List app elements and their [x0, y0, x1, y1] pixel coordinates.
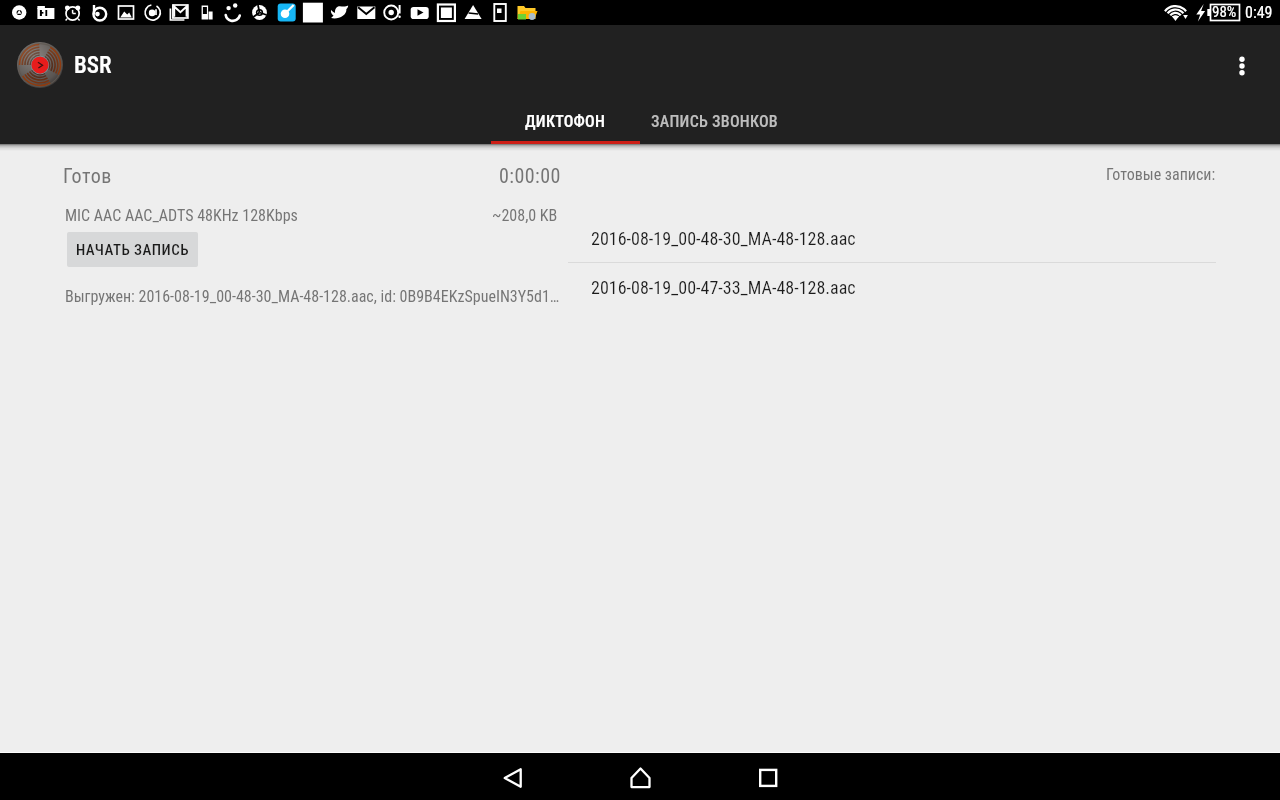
button[interactable]: BSR app icon: [0, 25, 126, 105]
staticText: 2016-08-19_00-47-33_MA-48-128.aac: [591, 277, 856, 298]
button[interactable]: ДИКТОФОН: [491, 105, 640, 144]
button[interactable]: Home: [576, 753, 704, 800]
staticText: BSR: [74, 52, 112, 79]
staticText: Готовые записи:: [1106, 165, 1216, 184]
staticText: ДИКТОФОН: [525, 112, 606, 131]
staticText: Готов: [63, 164, 112, 187]
button[interactable]: More options: [1218, 42, 1266, 90]
staticText: НАЧАТЬ ЗАПИСЬ: [76, 241, 189, 259]
button[interactable]: Recents: [704, 753, 832, 800]
button[interactable]: НАЧАТЬ ЗАПИСЬ: [67, 232, 198, 267]
staticText: ~208,0 KB: [492, 206, 558, 225]
staticText: 2016-08-19_00-48-30_MA-48-128.aac: [591, 228, 856, 249]
other: BSR app icon: [17, 42, 63, 88]
staticText: 0:00:00: [499, 164, 561, 187]
button[interactable]: Back: [448, 753, 576, 800]
staticText: 0:49: [1245, 3, 1273, 22]
staticText: ЗАПИСЬ ЗВОНКОВ: [651, 112, 778, 131]
button[interactable]: 2016-08-19_00-47-33_MA-48-128.aac: [568, 263, 1280, 311]
button[interactable]: ЗАПИСЬ ЗВОНКОВ: [640, 105, 789, 144]
staticText: MIC AAC AAC_ADTS 48KHz 128Kbps: [65, 206, 298, 225]
staticText: 98%: [1212, 3, 1237, 21]
button[interactable]: 2016-08-19_00-48-30_MA-48-128.aac: [568, 214, 1280, 262]
staticText: Выгружен: 2016-08-19_00-48-30_MA-48-128.…: [65, 287, 560, 306]
